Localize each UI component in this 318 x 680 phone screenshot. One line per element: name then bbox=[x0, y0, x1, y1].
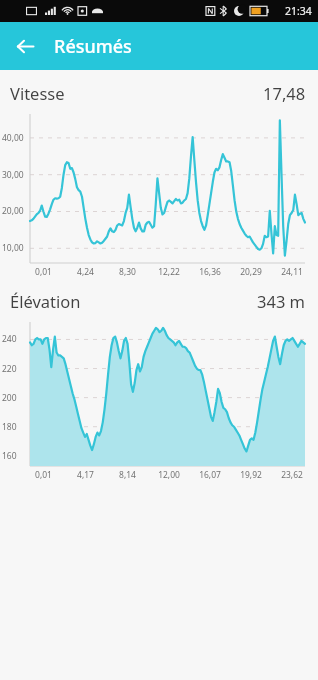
staticText: 16,36 bbox=[199, 266, 221, 278]
staticText: 4,24 bbox=[77, 266, 94, 278]
staticText: 0,01 bbox=[35, 266, 52, 278]
button[interactable]: Vitesse bbox=[0, 70, 318, 110]
staticText: Résumés bbox=[54, 34, 132, 59]
staticText: 12,00 bbox=[158, 469, 180, 481]
staticText: 240 bbox=[2, 333, 17, 345]
staticText: 0,01 bbox=[35, 469, 52, 481]
staticText: 20,00 bbox=[2, 205, 24, 217]
staticText: 30,00 bbox=[2, 169, 24, 181]
staticText: 40,00 bbox=[2, 132, 24, 144]
staticText: Élévation bbox=[10, 290, 81, 312]
button[interactable]: Élévation bbox=[0, 278, 318, 318]
staticText: 4,17 bbox=[77, 469, 94, 481]
staticText: 23,62 bbox=[281, 469, 303, 481]
staticText: 160 bbox=[2, 450, 17, 462]
staticText: 19,92 bbox=[240, 469, 262, 481]
staticText: 20,29 bbox=[240, 266, 262, 278]
staticText: 10,00 bbox=[2, 242, 24, 254]
staticText: 12,22 bbox=[158, 266, 180, 278]
staticText: 343 m bbox=[257, 290, 306, 312]
staticText: 8,14 bbox=[119, 469, 136, 481]
staticText: 16,07 bbox=[199, 469, 221, 481]
staticText: Vitesse bbox=[10, 82, 65, 104]
staticText: 24,11 bbox=[281, 266, 303, 278]
button[interactable]: Retour bbox=[8, 29, 42, 63]
staticText: 21:34 bbox=[285, 4, 312, 18]
staticText: 17,48 bbox=[263, 82, 306, 104]
staticText: 220 bbox=[2, 363, 17, 375]
staticText: 180 bbox=[2, 421, 17, 433]
staticText: 8,30 bbox=[119, 266, 136, 278]
staticText: 200 bbox=[2, 392, 17, 404]
